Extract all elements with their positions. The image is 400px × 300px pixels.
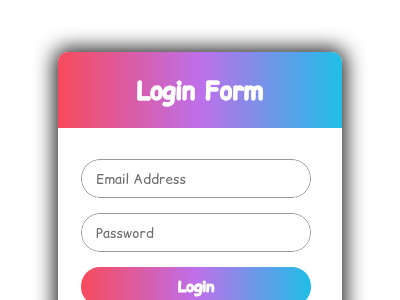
staticText: Login bbox=[178, 276, 215, 297]
button[interactable]: Login bbox=[81, 267, 311, 300]
staticText: Password bbox=[96, 224, 154, 243]
staticText: Email Address bbox=[96, 170, 187, 189]
staticText: Login Form bbox=[137, 74, 263, 107]
button[interactable]: Password bbox=[81, 213, 311, 252]
button[interactable]: Email Address bbox=[81, 159, 311, 198]
